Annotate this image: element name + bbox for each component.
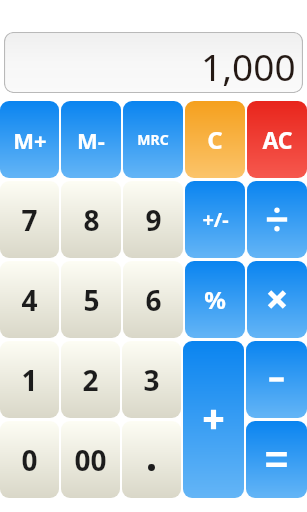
- staticText: 00: [74, 441, 107, 479]
- button[interactable]: Plus minus: [185, 181, 245, 258]
- button[interactable]: M+: [0, 101, 59, 178]
- button[interactable]: M-: [61, 101, 121, 178]
- staticText: M-: [77, 125, 105, 155]
- staticText: +/-: [202, 206, 229, 233]
- button[interactable]: Plus: [183, 341, 244, 498]
- button[interactable]: C: [185, 101, 245, 178]
- staticText: 1: [21, 361, 38, 399]
- staticText: 3: [143, 361, 160, 399]
- staticText: M+: [13, 125, 47, 155]
- staticText: 9: [145, 201, 162, 239]
- button[interactable]: Equals: [246, 421, 307, 498]
- button[interactable]: 2: [61, 341, 120, 418]
- staticText: 2: [82, 361, 99, 399]
- button[interactable]: 0: [0, 421, 59, 498]
- button[interactable]: 5: [61, 261, 121, 338]
- button[interactable]: Multiply: [247, 261, 307, 338]
- staticText: C: [207, 123, 223, 156]
- button[interactable]: 00: [61, 421, 120, 498]
- button[interactable]: 3: [122, 341, 181, 418]
- button[interactable]: Decimal point: [122, 421, 181, 498]
- button[interactable]: AC: [247, 101, 307, 178]
- button[interactable]: 8: [61, 181, 121, 258]
- staticText: 0: [21, 441, 38, 479]
- staticText: 8: [83, 201, 100, 239]
- button[interactable]: Minus: [246, 341, 307, 418]
- staticText: 1,000: [201, 41, 296, 91]
- staticText: %: [204, 283, 226, 316]
- staticText: AC: [262, 124, 293, 155]
- button[interactable]: 1: [0, 341, 59, 418]
- staticText: 6: [145, 281, 162, 319]
- staticText: MRC: [137, 130, 169, 149]
- staticText: 7: [21, 201, 38, 239]
- button[interactable]: Percent: [185, 261, 245, 338]
- staticText: 4: [21, 281, 38, 319]
- button[interactable]: Divide: [247, 181, 307, 258]
- button[interactable]: 7: [0, 181, 59, 258]
- button[interactable]: 6: [123, 261, 183, 338]
- button[interactable]: MRC: [123, 101, 183, 178]
- button[interactable]: 9: [123, 181, 183, 258]
- button[interactable]: 4: [0, 261, 59, 338]
- staticText: 5: [83, 281, 100, 319]
